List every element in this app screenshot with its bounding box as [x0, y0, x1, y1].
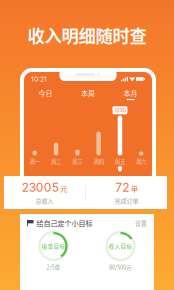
staticText: 10:21	[31, 75, 47, 83]
button[interactable]: 今日	[24, 86, 67, 101]
staticText: 今日	[38, 88, 52, 98]
staticText: 周五	[115, 157, 125, 165]
button[interactable]: 本周	[67, 86, 109, 101]
staticText: 总收入	[35, 196, 53, 205]
staticText: 本周	[81, 88, 95, 98]
staticText: 本月	[124, 88, 138, 98]
staticText: 收入目标	[108, 242, 132, 250]
button[interactable]: 本月	[109, 86, 152, 101]
staticText: 周三	[72, 157, 82, 165]
button[interactable]: 设置	[135, 219, 147, 227]
staticText: 给自己定个小目标	[36, 218, 92, 228]
staticText: 收入明细随时查	[27, 22, 146, 48]
staticText: 72	[115, 180, 129, 194]
staticText: 完成订单	[114, 196, 138, 205]
staticText: 接单目标	[41, 242, 65, 250]
staticText: 80/500元	[109, 263, 132, 271]
staticText: 2/5单	[46, 263, 60, 271]
staticText: 23005	[22, 180, 59, 194]
staticText: 设置	[135, 219, 147, 227]
staticText: 单	[131, 183, 138, 194]
staticText: 周一	[30, 157, 40, 165]
staticText: 元	[60, 183, 67, 194]
staticText: 周六	[136, 157, 146, 165]
staticText: 周四	[94, 157, 104, 165]
staticText: 1230	[114, 107, 125, 113]
staticText: 周二	[51, 157, 61, 165]
